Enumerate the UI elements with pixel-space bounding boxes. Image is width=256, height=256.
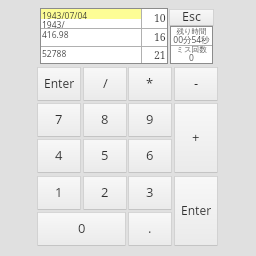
staticText: 8 — [101, 110, 109, 128]
staticText: 1943/ — [42, 19, 65, 31]
staticText: Enter — [181, 202, 212, 218]
staticText: - — [194, 74, 199, 92]
button[interactable]: 8 — [83, 103, 127, 137]
staticText: 5 — [101, 146, 109, 164]
button[interactable]: Enter — [174, 176, 218, 246]
button[interactable]: Enter — [37, 67, 81, 101]
staticText: 16 — [154, 30, 166, 44]
button[interactable]: 9 — [128, 103, 172, 137]
staticText: 1943/07/04 — [42, 10, 88, 22]
staticText: ミス回数 — [176, 45, 207, 54]
button[interactable]: 6 — [128, 139, 172, 173]
staticText: 2 — [101, 183, 109, 201]
button[interactable]: 2 — [83, 176, 127, 210]
staticText: 3 — [146, 183, 154, 201]
button[interactable]: - — [174, 67, 218, 101]
staticText: 416.98 — [42, 29, 69, 41]
staticText: 7 — [55, 110, 63, 128]
staticText: 21 — [154, 48, 166, 62]
button[interactable]: 3 — [128, 176, 172, 210]
staticText: 0 — [78, 219, 86, 237]
button[interactable]: 1 — [37, 176, 81, 210]
staticText: Esc — [182, 8, 201, 25]
staticText: 4 — [55, 146, 63, 164]
staticText: 0 — [189, 52, 194, 64]
button[interactable]: / — [83, 67, 127, 101]
staticText: 00分54秒 — [173, 34, 210, 46]
staticText: . — [148, 219, 152, 237]
button[interactable]: 5 — [83, 139, 127, 173]
staticText: 残り時間 — [176, 27, 207, 36]
button[interactable]: 0 — [37, 212, 126, 246]
staticText: 9 — [146, 110, 154, 128]
button[interactable]: . — [128, 212, 172, 246]
staticText: Enter — [44, 75, 75, 91]
button[interactable]: * — [128, 67, 172, 101]
staticText: 6 — [146, 146, 154, 164]
button[interactable]: 4 — [37, 139, 81, 173]
staticText: * — [146, 74, 154, 92]
staticText: / — [103, 74, 108, 92]
button[interactable]: 7 — [37, 103, 81, 137]
staticText: 52788 — [42, 48, 67, 60]
button[interactable]: + — [174, 103, 218, 173]
staticText: + — [192, 128, 200, 146]
staticText: 10 — [154, 11, 166, 25]
button[interactable]: Esc — [169, 9, 214, 26]
staticText: 1 — [55, 183, 63, 201]
